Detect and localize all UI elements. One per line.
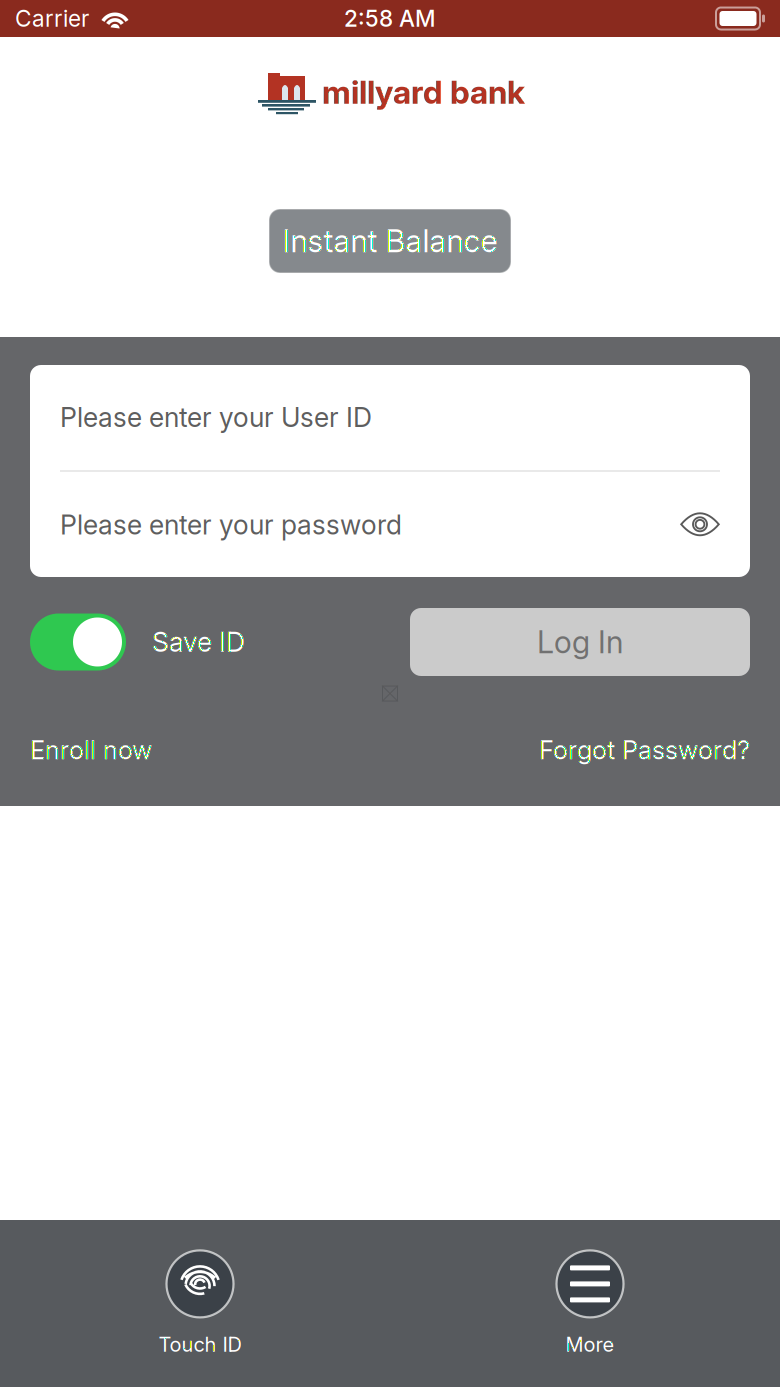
staticText: Touch ID: [158, 1332, 241, 1357]
staticText: Please enter your password: [60, 509, 402, 541]
staticText: millyard bank: [322, 73, 525, 111]
staticText: Enroll now: [30, 735, 152, 765]
button[interactable]: Instant Balance: [269, 209, 511, 273]
button[interactable]: Please enter your password: [30, 472, 750, 578]
button[interactable]: Enroll now: [30, 735, 152, 765]
staticText: Save ID: [152, 626, 245, 658]
staticText: More: [565, 1332, 614, 1357]
button[interactable]: Please enter your User ID: [30, 364, 750, 470]
button[interactable]: Touch ID: [0, 1241, 400, 1366]
image: [382, 685, 398, 701]
button[interactable]: More: [400, 1241, 780, 1366]
staticText: Please enter your User ID: [60, 401, 372, 433]
staticText: 2:58 AM: [344, 5, 436, 32]
staticText: Instant Balance: [282, 222, 497, 259]
button[interactable]: Save ID: [30, 608, 245, 676]
staticText: Log In: [537, 623, 623, 660]
button[interactable]: Log In: [410, 608, 750, 676]
staticText: Carrier: [15, 5, 89, 32]
button[interactable]: Forgot Password?: [539, 735, 750, 765]
staticText: Forgot Password?: [539, 735, 750, 765]
